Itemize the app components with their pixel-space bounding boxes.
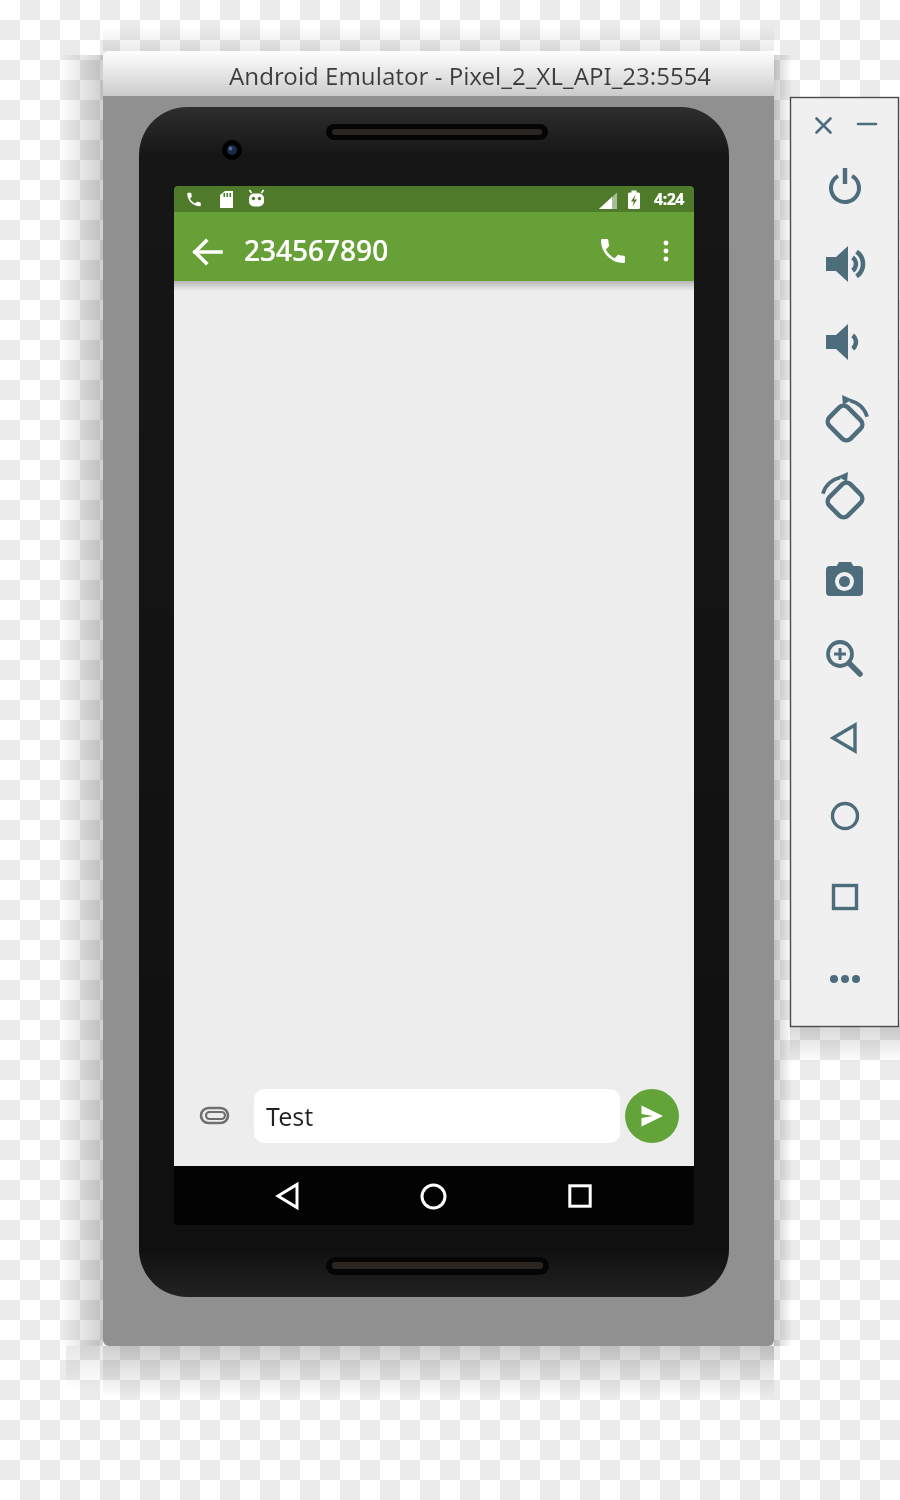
button[interactable] xyxy=(591,230,635,274)
staticText: 234567890 xyxy=(244,231,389,269)
button[interactable] xyxy=(818,789,872,843)
button[interactable] xyxy=(818,471,872,525)
staticText: Android Emulator - Pixel_2_XL_API_23:555… xyxy=(229,59,712,92)
button[interactable] xyxy=(818,237,872,291)
staticText: 4:24 xyxy=(654,188,684,210)
button[interactable] xyxy=(848,106,886,144)
button[interactable] xyxy=(818,952,872,1006)
button[interactable] xyxy=(818,315,872,369)
button[interactable] xyxy=(818,711,872,765)
button[interactable] xyxy=(818,870,872,924)
button[interactable] xyxy=(804,106,842,144)
button[interactable] xyxy=(558,1174,602,1218)
button[interactable] xyxy=(266,1174,310,1218)
button[interactable]: Test xyxy=(254,1089,620,1143)
button[interactable] xyxy=(193,1094,237,1138)
button[interactable] xyxy=(818,394,872,448)
button[interactable] xyxy=(818,631,872,685)
button[interactable] xyxy=(818,159,872,213)
button[interactable] xyxy=(818,553,872,607)
button[interactable] xyxy=(644,230,688,274)
button[interactable] xyxy=(411,1174,455,1218)
staticText: Test xyxy=(266,1099,314,1133)
button[interactable] xyxy=(186,230,230,274)
button[interactable] xyxy=(625,1089,679,1143)
